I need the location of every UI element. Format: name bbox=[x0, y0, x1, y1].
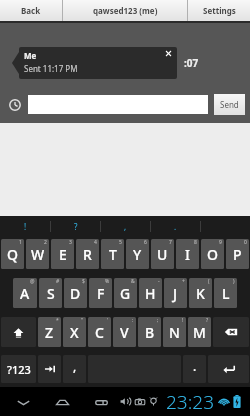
button[interactable]: Recent apps bbox=[91, 392, 111, 412]
button[interactable]: ! bbox=[0, 216, 50, 237]
button[interactable]: Enter bbox=[208, 355, 249, 383]
staticText: P bbox=[233, 245, 242, 264]
staticText: 4 bbox=[94, 239, 97, 246]
button[interactable]: . bbox=[151, 216, 200, 237]
button[interactable]: A bbox=[13, 278, 37, 308]
staticText: G bbox=[120, 284, 131, 303]
staticText: ! bbox=[24, 221, 27, 232]
staticText: H bbox=[145, 284, 156, 303]
button[interactable]: O bbox=[201, 239, 224, 269]
button[interactable]: Back bbox=[0, 0, 62, 21]
button[interactable]: Dismiss bbox=[164, 49, 173, 58]
button[interactable]: Z bbox=[38, 317, 61, 347]
button[interactable]: Back bbox=[13, 392, 33, 412]
staticText: & bbox=[131, 278, 135, 285]
staticText: K bbox=[196, 284, 205, 303]
button[interactable]: Delete bbox=[213, 317, 249, 347]
staticText: 5 bbox=[119, 239, 122, 246]
button[interactable]: K bbox=[189, 278, 212, 308]
button[interactable]: W bbox=[26, 239, 49, 269]
button[interactable]: R bbox=[76, 239, 99, 269]
staticText: F bbox=[97, 284, 105, 303]
staticText: : bbox=[132, 317, 134, 324]
button[interactable]: Settings bbox=[188, 0, 250, 21]
staticText: U bbox=[157, 245, 168, 264]
staticText: 3 bbox=[69, 239, 72, 246]
button[interactable]: M bbox=[188, 317, 211, 347]
staticText: - bbox=[158, 278, 160, 285]
staticText: 1 bbox=[19, 239, 22, 246]
button[interactable]: T bbox=[101, 239, 124, 269]
button[interactable]: Tab bbox=[38, 355, 61, 383]
button[interactable]: Q bbox=[1, 239, 24, 269]
button[interactable]: ? bbox=[51, 216, 100, 237]
button[interactable]: L bbox=[214, 278, 237, 308]
button[interactable]: . bbox=[183, 355, 206, 383]
button[interactable]: Me bbox=[19, 47, 177, 79]
button[interactable]: F bbox=[89, 278, 112, 308]
staticText: ? bbox=[206, 317, 209, 324]
staticText: L bbox=[222, 284, 230, 303]
staticText: Z bbox=[45, 323, 54, 342]
staticText: ( bbox=[208, 278, 210, 285]
staticText: , bbox=[124, 221, 127, 232]
staticText: B bbox=[145, 323, 155, 342]
button[interactable]: qawsed123 (me) bbox=[63, 0, 187, 21]
staticText: ) bbox=[233, 278, 235, 285]
button[interactable]: B bbox=[138, 317, 161, 347]
button[interactable]: Y bbox=[126, 239, 149, 269]
staticText: M bbox=[193, 323, 206, 342]
staticText: ' bbox=[107, 317, 109, 324]
staticText: S bbox=[47, 284, 55, 303]
button[interactable]: C bbox=[88, 317, 111, 347]
staticText: ; bbox=[157, 317, 159, 324]
staticText: * bbox=[56, 317, 59, 324]
button[interactable]: E bbox=[51, 239, 74, 269]
staticText: J bbox=[173, 284, 178, 303]
staticText: X bbox=[70, 323, 79, 342]
button[interactable]: X bbox=[63, 317, 86, 347]
staticText: ! bbox=[182, 317, 184, 324]
staticText: 8 bbox=[194, 239, 197, 246]
button[interactable]: S bbox=[39, 278, 62, 308]
staticText: , bbox=[73, 358, 77, 374]
staticText: 23:23 bbox=[166, 389, 215, 415]
button[interactable]: V bbox=[113, 317, 136, 347]
button[interactable]: N bbox=[163, 317, 186, 347]
staticText: Me bbox=[24, 50, 37, 61]
staticText: Settings bbox=[203, 5, 236, 16]
button[interactable]: ?123 bbox=[1, 355, 36, 383]
button[interactable]: Shift bbox=[1, 317, 36, 347]
staticText: Q bbox=[7, 245, 18, 264]
button[interactable]: H bbox=[139, 278, 162, 308]
staticText: + bbox=[182, 278, 185, 285]
staticText: . bbox=[193, 358, 197, 374]
staticText: D bbox=[70, 284, 81, 303]
button[interactable]: G bbox=[114, 278, 137, 308]
staticText: 0 bbox=[244, 239, 247, 246]
staticText: 9 bbox=[219, 239, 222, 246]
button[interactable]: I bbox=[176, 239, 199, 269]
button[interactable]: Home bbox=[52, 392, 72, 412]
staticText: :07 bbox=[184, 56, 199, 70]
staticText: ? bbox=[74, 221, 78, 232]
staticText: V bbox=[120, 323, 129, 342]
staticText: W bbox=[31, 245, 45, 264]
button[interactable]: , bbox=[101, 216, 150, 237]
button[interactable]: U bbox=[151, 239, 174, 269]
button[interactable]: J bbox=[164, 278, 187, 308]
button[interactable]: Message history bbox=[6, 96, 24, 114]
button[interactable]: P bbox=[226, 239, 249, 269]
button[interactable]: Send bbox=[214, 94, 245, 115]
button[interactable]: D bbox=[64, 278, 87, 308]
staticText: Back bbox=[21, 5, 41, 16]
staticText: 7 bbox=[169, 239, 172, 246]
staticText: " bbox=[81, 317, 84, 324]
staticText: Y bbox=[133, 245, 142, 264]
staticText: Send bbox=[220, 99, 239, 110]
staticText: O bbox=[207, 245, 218, 264]
button[interactable]: , bbox=[63, 355, 86, 383]
